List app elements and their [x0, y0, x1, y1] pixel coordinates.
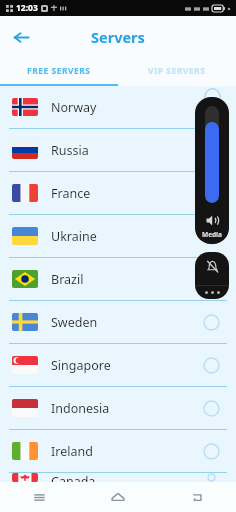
button[interactable]: Singapore	[0, 344, 236, 386]
button[interactable]: Brazil	[0, 258, 236, 300]
staticText: Sweden	[51, 314, 98, 331]
button[interactable]: Ukraine	[0, 215, 236, 257]
button[interactable]: Norway	[0, 86, 236, 128]
staticText: Russia	[51, 142, 89, 159]
button[interactable]: Sweden	[0, 301, 236, 343]
staticText: Media	[202, 230, 222, 239]
button[interactable]: Russia	[0, 129, 236, 171]
button[interactable]: Canada	[0, 473, 236, 482]
button[interactable]: FREE SERVERS	[0, 58, 118, 84]
staticText: Norway	[51, 99, 97, 116]
button[interactable]: Ireland	[0, 430, 236, 472]
staticText: Ireland	[51, 443, 93, 460]
button[interactable]: Back	[157, 482, 236, 512]
button[interactable]: Ringer mode	[195, 252, 229, 299]
staticText: Singapore	[51, 357, 111, 374]
button[interactable]: Back	[6, 22, 36, 52]
staticText: Canada	[51, 473, 96, 482]
staticText: France	[51, 185, 91, 202]
button[interactable]: VIP SERVERS	[118, 58, 236, 84]
button[interactable]: France	[0, 172, 236, 214]
staticText: FREE SERVERS	[27, 65, 91, 77]
button[interactable]: Media volume slider	[195, 97, 229, 244]
staticText: Indonesia	[51, 400, 110, 417]
staticText: Ukraine	[51, 228, 97, 245]
button[interactable]: Home	[78, 482, 157, 512]
staticText: VIP SERVERS	[148, 65, 206, 77]
button[interactable]: Recent apps	[0, 482, 78, 512]
button[interactable]: Indonesia	[0, 387, 236, 429]
staticText: Servers	[91, 27, 145, 47]
staticText: 12:03	[16, 2, 38, 14]
staticText: Brazil	[51, 271, 84, 288]
